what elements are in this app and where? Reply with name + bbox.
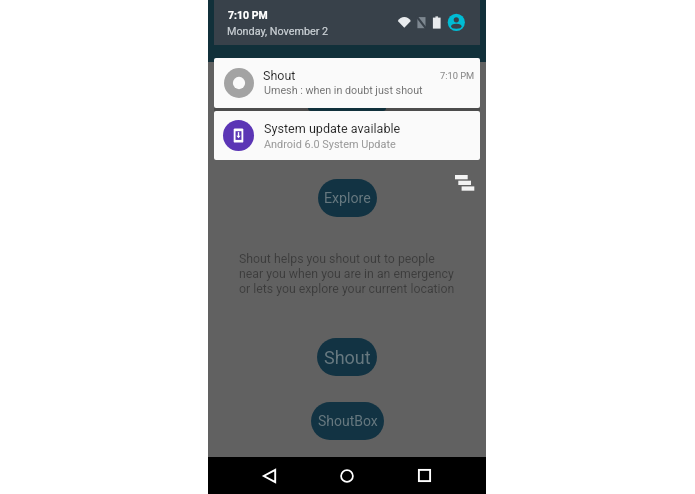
staticText: Monday, November 2 [227, 25, 329, 38]
staticText: Umesh : when in doubt just shout [264, 84, 423, 97]
staticText: System update available [264, 121, 401, 136]
button[interactable]: Explore [318, 179, 377, 217]
button[interactable]: System update available [214, 111, 480, 160]
staticText: ShoutBox [318, 413, 378, 429]
button[interactable]: Shout [317, 338, 377, 376]
staticText: Explore [324, 190, 371, 207]
staticText: Shout [324, 347, 371, 368]
staticText: Shout helps you shout out to people near… [239, 252, 463, 296]
button[interactable]: Shout [214, 58, 480, 108]
staticText: 7:10 PM [228, 9, 268, 21]
staticText: Shout [263, 68, 296, 83]
button[interactable]: ShoutBox [311, 402, 384, 440]
button[interactable]: Recent apps [411, 462, 438, 489]
button[interactable]: Back [256, 462, 283, 489]
button[interactable]: Home [333, 462, 360, 489]
button[interactable]: Menu [451, 170, 477, 196]
staticText: 7:10 PM [440, 70, 475, 81]
staticText: Android 6.0 System Update [264, 138, 396, 151]
